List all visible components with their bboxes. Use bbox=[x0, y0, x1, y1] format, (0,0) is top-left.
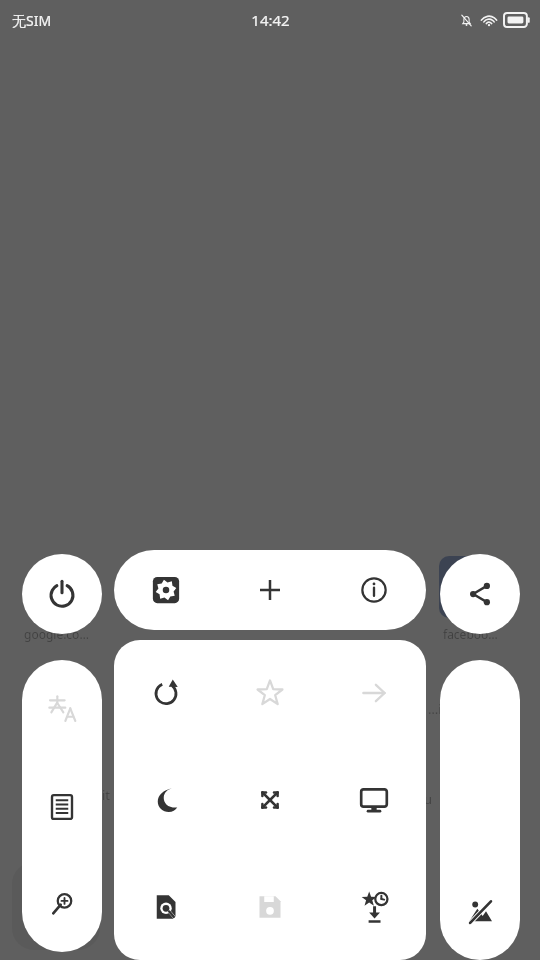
button[interactable]: New tab bbox=[218, 550, 322, 630]
button[interactable]: Block images bbox=[440, 864, 520, 960]
button[interactable]: Full screen bbox=[218, 746, 322, 853]
staticText: it bbox=[102, 786, 111, 804]
button[interactable]: Desktop site bbox=[322, 746, 426, 853]
button[interactable]: Page info bbox=[322, 550, 426, 630]
button[interactable]: Night mode bbox=[114, 746, 218, 853]
staticText: u bbox=[424, 790, 433, 808]
staticText: …i bbox=[428, 700, 442, 718]
staticText: 14:42 bbox=[251, 10, 290, 30]
button[interactable]: Forward bbox=[322, 640, 426, 746]
staticText: google.co… bbox=[24, 626, 89, 642]
button[interactable]: Share bbox=[440, 554, 520, 634]
button[interactable]: Bookmark bbox=[218, 640, 322, 746]
button[interactable]: Bookmarks and history bbox=[322, 853, 426, 960]
button[interactable]: Reload bbox=[114, 640, 218, 746]
button[interactable]: Exit bbox=[22, 554, 102, 634]
button[interactable]: Find in page bbox=[114, 853, 218, 960]
button[interactable]: Reader mode bbox=[22, 758, 102, 855]
staticText: 无SIM bbox=[12, 11, 52, 30]
button[interactable]: Translate bbox=[22, 660, 102, 758]
staticText: faceboo… bbox=[443, 626, 498, 642]
button[interactable]: Zoom in bbox=[22, 855, 102, 952]
button[interactable]: Settings bbox=[114, 550, 218, 630]
button[interactable]: Save page bbox=[218, 853, 322, 960]
